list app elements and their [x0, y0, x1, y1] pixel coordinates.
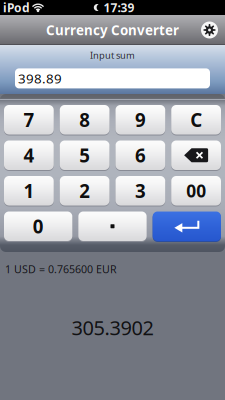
staticText: Input sum	[90, 49, 135, 61]
staticText: 305.3902	[71, 314, 153, 341]
button[interactable]: 2	[60, 176, 110, 206]
button[interactable]: 1	[4, 176, 54, 206]
button[interactable]: Decimal point	[78, 211, 147, 242]
staticText: C	[190, 107, 202, 132]
button[interactable]: 9	[115, 105, 165, 135]
button[interactable]: C	[171, 105, 221, 135]
staticText: 3	[135, 178, 146, 203]
button[interactable]: 5	[60, 140, 110, 171]
staticText: 1	[23, 178, 34, 203]
staticText: 398.89	[18, 69, 62, 87]
staticText: 4	[23, 143, 34, 168]
staticText: 5	[79, 143, 90, 168]
button[interactable]: 3	[115, 176, 165, 206]
staticText: 2	[79, 178, 90, 203]
staticText: iPod	[3, 0, 30, 15]
button[interactable]: 7	[4, 105, 54, 135]
button[interactable]: 8	[60, 105, 110, 135]
button[interactable]: 4	[4, 140, 54, 171]
button[interactable]: Settings	[197, 16, 222, 44]
staticText: 9	[135, 107, 146, 132]
staticText: 17:39	[103, 0, 134, 15]
staticText: 8	[79, 107, 90, 132]
button[interactable]: 0	[4, 211, 72, 242]
staticText: Currency Converter	[46, 21, 179, 39]
button[interactable]: Delete	[171, 140, 221, 171]
staticText: 6	[135, 143, 146, 168]
button[interactable]: 6	[115, 140, 165, 171]
staticText: 0	[33, 214, 44, 239]
staticText: 1 USD = 0.765600 EUR	[5, 262, 117, 276]
button[interactable]: 00	[171, 176, 221, 206]
staticText: 7	[23, 107, 34, 132]
button[interactable]: Return	[153, 211, 221, 242]
staticText: 00	[186, 179, 206, 202]
